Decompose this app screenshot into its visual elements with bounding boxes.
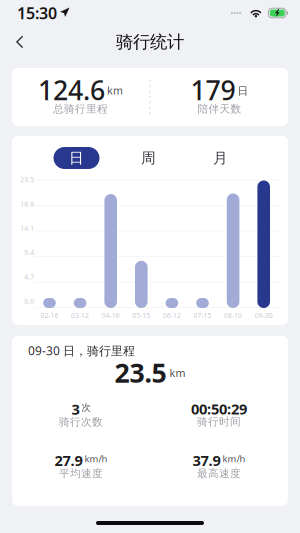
button[interactable]: Back (0, 27, 36, 56)
staticText: 骑行统计 (116, 31, 184, 53)
staticText: 07-15 (193, 311, 211, 320)
staticText: km/h (222, 452, 245, 465)
staticText: km/h (84, 452, 107, 465)
staticText: 总骑行里程 (53, 102, 108, 115)
staticText: km (169, 366, 185, 380)
staticText: 15:30 (17, 2, 57, 24)
staticText: 37.9 (192, 451, 220, 470)
staticText: 日 (237, 84, 248, 97)
staticText: 23.5 (20, 175, 34, 184)
staticText: 骑行时间 (197, 415, 241, 428)
staticText: 179 (190, 72, 235, 108)
staticText: 03-12 (71, 311, 89, 320)
staticText: 05-15 (132, 311, 150, 320)
staticText: 18.8 (20, 199, 34, 208)
staticText: 最高速度 (197, 467, 241, 480)
staticText: 14.1 (20, 224, 34, 233)
staticText: 08-10 (224, 311, 242, 320)
staticText: 9.4 (24, 248, 34, 257)
staticText: 27.9 (54, 451, 82, 470)
button[interactable]: 周 (125, 147, 171, 169)
staticText: 月 (213, 149, 228, 167)
staticText: 周 (141, 149, 156, 167)
staticText: 4.7 (24, 272, 34, 281)
staticText: 日 (69, 149, 84, 167)
staticText: 00:50:29 (191, 399, 247, 418)
staticText: 陪伴天数 (197, 102, 241, 115)
staticText: 23.5 (114, 355, 166, 390)
button[interactable]: 日 (53, 147, 99, 169)
staticText: 0.0 (24, 297, 34, 306)
staticText: 骑行次数 (59, 415, 103, 428)
staticText: 09-30 (255, 311, 273, 320)
staticText: km (107, 83, 123, 97)
staticText: 平均速度 (59, 467, 103, 480)
staticText: 124.6 (38, 72, 105, 108)
staticText: 09-30 日，骑行里程 (28, 342, 135, 358)
staticText: 06-12 (163, 311, 181, 320)
button[interactable]: 月 (197, 147, 243, 169)
staticText: 04-16 (102, 311, 120, 320)
staticText: 02-16 (40, 311, 58, 320)
staticText: 3 (71, 399, 79, 419)
staticText: 次 (81, 402, 90, 413)
